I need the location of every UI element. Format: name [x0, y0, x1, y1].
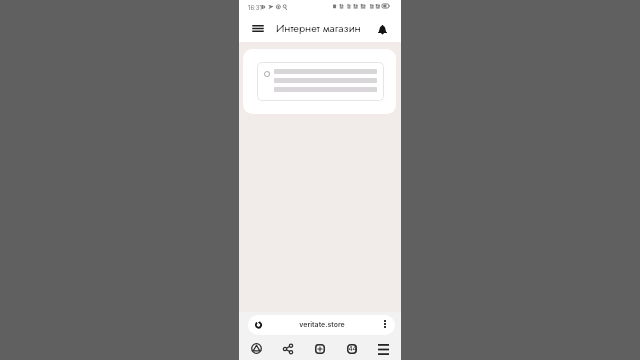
button[interactable]: Reload — [248, 315, 395, 335]
button[interactable] — [257, 62, 384, 101]
button[interactable]: Notifications — [372, 20, 392, 40]
button[interactable]: Share — [277, 338, 299, 360]
staticText: Интернет магазин — [276, 20, 361, 36]
staticText: 44 — [348, 345, 357, 353]
staticText: 16:31 — [248, 4, 262, 11]
button[interactable]: Home — [245, 337, 267, 359]
button[interactable]: Menu — [372, 338, 394, 360]
staticText: veritate.store — [299, 320, 345, 328]
button[interactable]: Tabs — [341, 338, 363, 360]
button[interactable]: Reload — [249, 316, 267, 334]
button[interactable]: Menu — [248, 18, 268, 38]
button[interactable]: More options — [376, 315, 394, 333]
button[interactable]: New tab — [309, 338, 331, 360]
